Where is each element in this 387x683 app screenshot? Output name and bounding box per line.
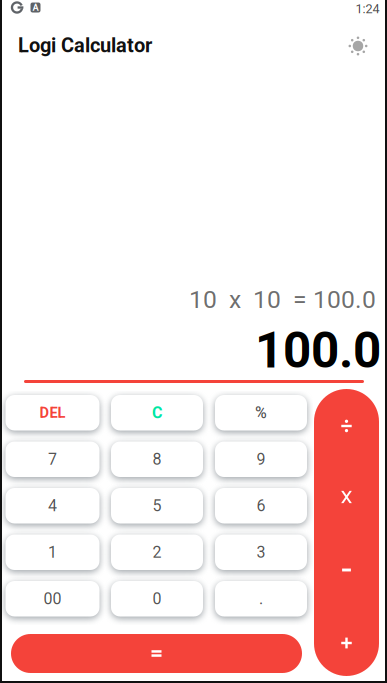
button[interactable]: Divide [314,390,379,462]
staticText: 8 [152,450,161,469]
staticText: % [255,403,267,422]
staticText: Logi Calculator [18,34,152,57]
button[interactable]: 4 [5,488,99,523]
button[interactable]: Equals [11,634,302,673]
staticText: C [152,403,162,422]
staticText: A [32,2,38,13]
button[interactable]: DEL [5,395,99,430]
button[interactable]: Multiply [314,461,379,533]
button[interactable]: . [215,581,307,616]
staticText: 5 [152,496,161,515]
staticText: 3 [256,543,265,562]
staticText: 6 [256,496,265,515]
staticText: 2 [152,543,161,562]
staticText: DEL [39,404,65,421]
staticText: 7 [48,450,57,469]
button[interactable]: 00 [5,581,99,616]
button[interactable]: C [111,395,203,430]
button[interactable]: 5 [111,488,203,523]
staticText: 9 [256,450,265,469]
button[interactable]: 8 [111,441,203,477]
staticText: 1:24 [355,1,379,16]
staticText: . [259,589,263,608]
button[interactable]: Subtract [314,534,379,606]
staticText: 4 [48,496,57,515]
button[interactable]: 7 [5,441,99,477]
button[interactable]: Toggle appearance [342,30,374,62]
staticText: 10 x 10 = 100.0 [189,285,376,314]
button[interactable]: 6 [215,488,307,523]
staticText: 1 [48,543,57,562]
button[interactable]: 0 [111,581,203,616]
button[interactable]: Add [314,607,379,679]
button[interactable]: % [215,395,307,430]
staticText: 0 [152,589,161,608]
button[interactable]: 9 [215,441,307,477]
button[interactable]: 2 [111,534,203,570]
staticText: 00 [43,589,61,608]
button[interactable]: 3 [215,534,307,570]
staticText: 100.0 [255,322,381,380]
button[interactable]: 1 [5,534,99,570]
